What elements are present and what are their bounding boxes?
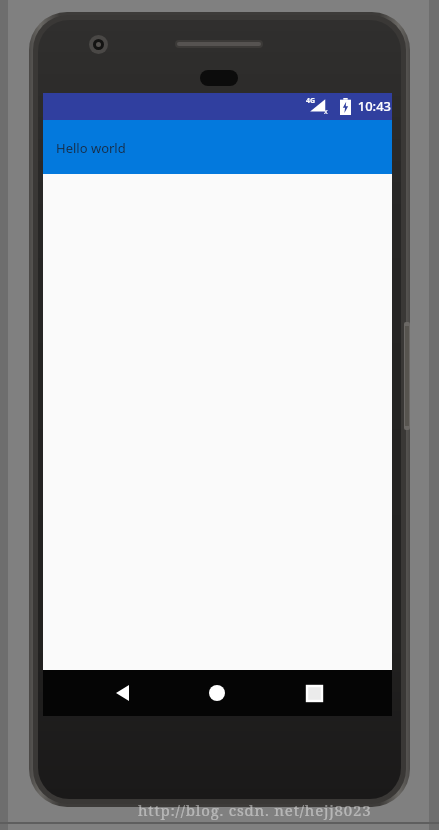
button[interactable]: Hello world xyxy=(43,120,392,174)
staticText: Hello world xyxy=(56,139,126,157)
button[interactable]: Home xyxy=(196,670,238,716)
staticText: 10:43 xyxy=(357,97,391,115)
button[interactable]: Recent apps xyxy=(293,670,335,716)
staticText: x xyxy=(324,107,328,117)
button[interactable]: Back xyxy=(101,670,143,716)
staticText: 4G xyxy=(306,96,316,106)
staticText: http://blog. csdn. net/hejj8023 xyxy=(138,800,372,820)
